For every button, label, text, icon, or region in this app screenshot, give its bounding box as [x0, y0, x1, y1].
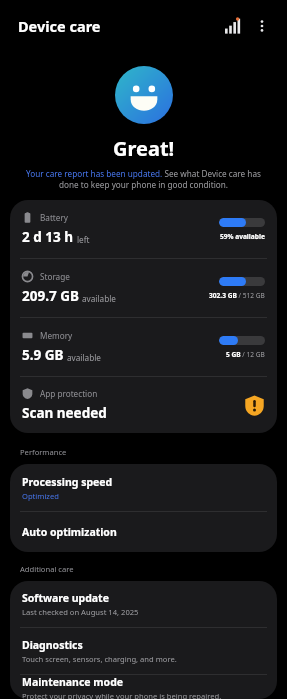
staticText: Maintenance mode — [22, 675, 124, 689]
staticText: Auto optimization — [22, 525, 117, 539]
staticText: Your care report has been updated. See w… — [20, 168, 267, 190]
button[interactable]: Processing speed — [10, 464, 277, 511]
staticText: Battery — [40, 212, 69, 223]
staticText: left — [77, 234, 90, 245]
staticText: Protect your privacy while your phone is… — [22, 691, 222, 699]
staticText: Device care — [18, 16, 101, 36]
staticText: Optimized — [22, 491, 59, 501]
button[interactable]: Maintenance mode — [10, 675, 277, 699]
staticText: 59% available — [220, 232, 265, 241]
button[interactable]: Diagnostics — [10, 628, 277, 674]
staticText: Performance — [20, 447, 67, 457]
button[interactable]: Usage statistics — [217, 11, 247, 41]
button[interactable]: Software update — [10, 581, 277, 627]
staticText: 209.7 GB — [22, 287, 79, 305]
staticText: 2 d 13 h — [22, 228, 74, 246]
staticText: Memory — [40, 330, 73, 341]
staticText: available — [82, 293, 116, 304]
button[interactable]: Auto optimization — [10, 512, 277, 552]
staticText: Additional care — [20, 564, 74, 574]
button[interactable]: Memory — [10, 318, 277, 376]
button[interactable]: Battery — [10, 200, 277, 258]
staticText: 5.9 GB — [22, 346, 64, 364]
staticText: Software update — [22, 591, 109, 605]
staticText: available — [67, 352, 101, 363]
staticText: Scan needed — [22, 404, 107, 422]
staticText: 5 GB / 12 GB — [226, 350, 265, 359]
staticText: Touch screen, sensors, charging, and mor… — [22, 654, 177, 664]
staticText: Great! — [113, 135, 175, 162]
staticText: App protection — [40, 388, 98, 399]
staticText: 302.3 GB / 512 GB — [209, 291, 265, 300]
button[interactable]: Storage — [10, 259, 277, 317]
button[interactable]: More options — [247, 11, 277, 41]
staticText: Last checked on August 14, 2025 — [22, 607, 139, 617]
staticText: Diagnostics — [22, 638, 83, 652]
staticText: Processing speed — [22, 475, 113, 489]
button[interactable]: App protection — [10, 377, 277, 433]
staticText: Storage — [40, 271, 70, 282]
